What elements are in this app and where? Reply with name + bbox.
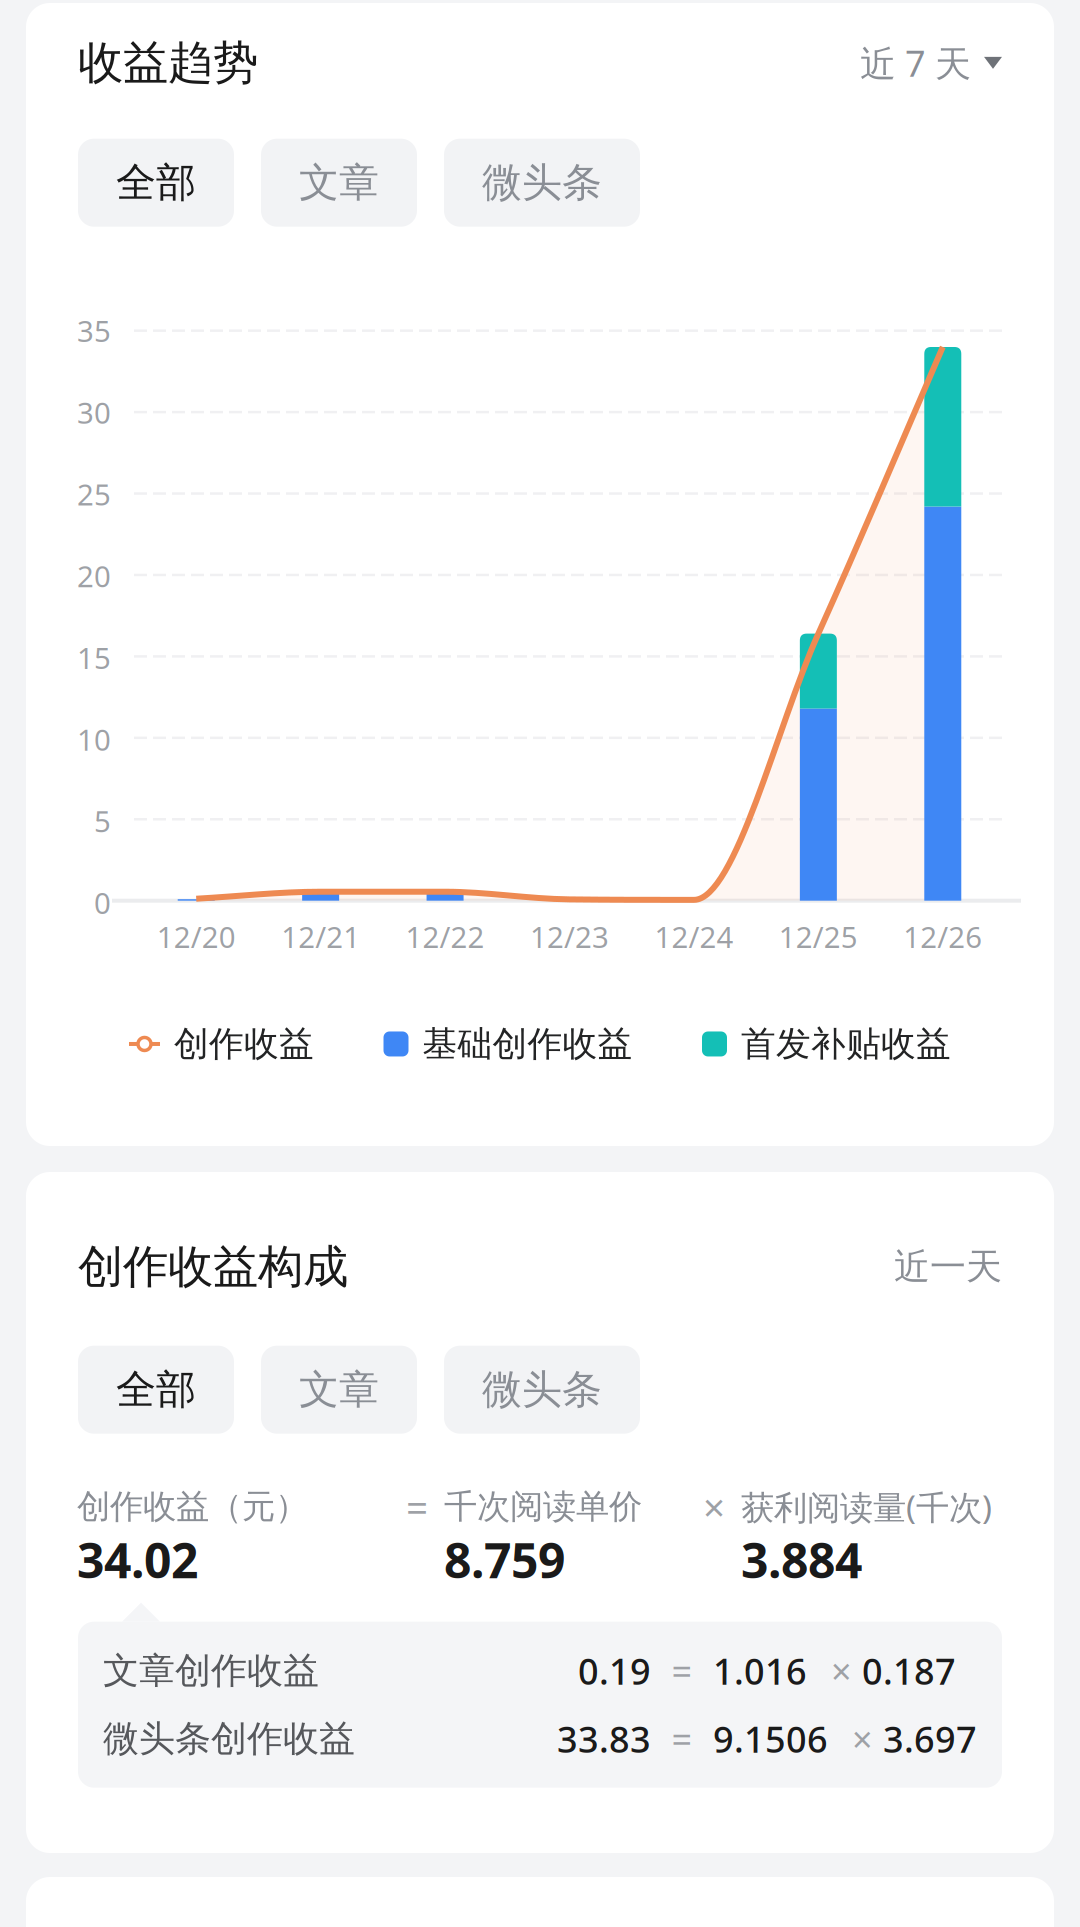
- staticText: 34.02: [77, 1528, 198, 1591]
- staticText: 全部: [116, 1365, 196, 1414]
- staticText: 12/22: [406, 917, 485, 956]
- staticText: 0.19: [578, 1647, 651, 1695]
- button[interactable]: 文章: [261, 1346, 417, 1434]
- staticText: 创作收益构成: [78, 1239, 348, 1295]
- staticText: 微头条: [482, 158, 602, 207]
- staticText: 9.1506: [713, 1715, 828, 1763]
- button[interactable]: 微头条: [444, 1346, 640, 1434]
- staticText: 微头条创作收益: [103, 1717, 355, 1761]
- staticText: 12/23: [530, 917, 609, 956]
- staticText: 千次阅读单价: [444, 1486, 642, 1527]
- button[interactable]: 文章: [261, 139, 417, 227]
- staticText: 全部: [116, 158, 196, 207]
- staticText: 1.016: [713, 1647, 807, 1695]
- staticText: 20: [77, 556, 111, 595]
- staticText: 12/25: [779, 917, 858, 956]
- button[interactable]: 全部: [78, 1346, 234, 1434]
- staticText: 5: [94, 801, 111, 840]
- staticText: 33.83: [557, 1715, 651, 1763]
- staticText: 35: [77, 311, 111, 350]
- staticText: 首发补贴收益: [741, 1023, 951, 1065]
- staticText: ×: [831, 1647, 852, 1695]
- staticText: 基础创作收益: [422, 1023, 632, 1065]
- staticText: 12/21: [281, 917, 360, 956]
- staticText: 文章: [299, 158, 379, 207]
- staticText: 近 7 天: [860, 39, 971, 87]
- staticText: 12/24: [654, 917, 733, 956]
- staticText: 收益趋势: [78, 35, 258, 91]
- staticText: ×: [703, 1481, 725, 1532]
- staticText: =: [671, 1647, 692, 1695]
- staticText: 3.884: [741, 1528, 862, 1591]
- staticText: 创作收益（元）: [77, 1486, 308, 1527]
- staticText: 30: [77, 393, 111, 432]
- staticText: 10: [77, 720, 111, 759]
- button[interactable]: 全部: [78, 139, 234, 227]
- staticText: 3.697: [883, 1715, 977, 1763]
- staticText: 0: [94, 883, 111, 922]
- staticText: =: [406, 1481, 428, 1532]
- staticText: 近一天: [894, 1245, 1002, 1289]
- staticText: ×: [852, 1715, 873, 1763]
- button[interactable]: 近一天: [894, 1245, 1002, 1289]
- staticText: 文章创作收益: [103, 1649, 319, 1693]
- button[interactable]: 微头条: [444, 139, 640, 227]
- staticText: 创作收益: [174, 1023, 314, 1065]
- staticText: 12/26: [903, 917, 982, 956]
- staticText: 12/20: [157, 917, 236, 956]
- staticText: 微头条: [482, 1365, 602, 1414]
- staticText: 文章: [299, 1365, 379, 1414]
- staticText: 15: [77, 638, 111, 677]
- staticText: 8.759: [444, 1528, 565, 1591]
- staticText: 获利阅读量(千次): [741, 1484, 992, 1529]
- staticText: =: [671, 1715, 692, 1763]
- staticText: 0.187: [862, 1647, 956, 1695]
- button[interactable]: 近 7 天: [860, 39, 1002, 87]
- staticText: 25: [77, 475, 111, 514]
